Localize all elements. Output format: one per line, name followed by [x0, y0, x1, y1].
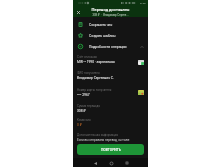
staticText: Номер карты получателя [77, 88, 112, 91]
button[interactable]: Home [107, 159, 115, 167]
button[interactable]: Счёт списания [73, 52, 148, 67]
button[interactable]: Recent apps [123, 159, 131, 167]
staticText: 308 ₽ [77, 109, 86, 113]
staticText: •••• 2967 [77, 93, 90, 97]
button[interactable]: Подробности операции [73, 41, 148, 52]
staticText: Сумма перевода [77, 104, 100, 107]
button[interactable]: Комиссия [73, 116, 148, 129]
button[interactable]: Номер карты получателя [73, 84, 148, 100]
staticText: Подробности операции [89, 45, 127, 49]
button[interactable]: ФИО получателя [73, 67, 148, 84]
staticText: ФИО получателя [77, 71, 100, 74]
staticText: ПОВТОРИТЬ [101, 148, 121, 152]
staticText: Счёт списания [77, 55, 97, 58]
staticText: 21:05 [140, 2, 146, 5]
button[interactable]: Сохранить чек [73, 19, 148, 30]
button[interactable]: Создать шаблон [73, 30, 148, 41]
staticText: 308 ₽ · Владимир Сергее... [81, 13, 140, 16]
staticText: Если вы отправили перевод, он тоже [77, 138, 130, 142]
staticText: 0 ₽ [77, 123, 82, 127]
staticText: MIR •• 1990 · зарплатная [77, 60, 115, 64]
staticText: Дополнительная информация [77, 133, 119, 136]
staticText: Перевод доставлен [81, 7, 140, 12]
staticText: Сохранить чек [89, 23, 113, 27]
staticText: Комиссия [77, 118, 91, 121]
staticText: Владимир Сергеевич С. [77, 76, 114, 80]
staticText: Создать шаблон [89, 34, 116, 38]
button[interactable]: Close [73, 7, 83, 17]
button[interactable]: Back [91, 159, 99, 167]
button[interactable]: ПОВТОРИТЬ [77, 144, 144, 155]
button[interactable]: Сумма перевода [73, 100, 148, 116]
